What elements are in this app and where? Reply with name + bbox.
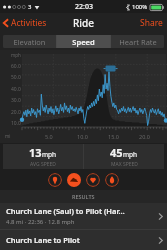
- button[interactable]: Calories: [105, 173, 119, 187]
- button[interactable]: Speed: [67, 173, 81, 187]
- staticText: 22:03: [75, 2, 93, 12]
- staticText: Elevation: [13, 37, 46, 47]
- staticText: 60.0: [11, 63, 21, 70]
- staticText: 10.0: [77, 133, 88, 140]
- staticText: Church Lane (Saul) to Pilot (Har…: [6, 206, 125, 216]
- staticText: 45: [110, 145, 123, 160]
- button[interactable]: Elevation: [3, 35, 56, 48]
- button[interactable]: Church Lane to Pilot: [0, 230, 167, 250]
- staticText: MAX SPEED: [111, 161, 138, 168]
- button[interactable]: 45: [84, 144, 164, 169]
- staticText: mph: [11, 52, 21, 58]
- staticText: 10.0: [11, 120, 21, 127]
- staticText: mph: [42, 150, 57, 159]
- button[interactable]: 13: [3, 144, 83, 169]
- button[interactable]: Activities: [0, 14, 51, 32]
- button[interactable]: Share: [136, 14, 167, 32]
- staticText: 4.8 mi · 22:36 · 12.8 mph: [6, 218, 75, 226]
- staticText: Speed: [72, 37, 95, 47]
- staticText: 50.0: [11, 74, 21, 81]
- staticText: 3: [28, 3, 32, 11]
- staticText: mph: [123, 150, 138, 159]
- staticText: 30.0: [11, 97, 21, 104]
- staticText: mi: [5, 133, 11, 139]
- staticText: RESULTS: [72, 193, 95, 200]
- staticText: Ride: [73, 16, 94, 30]
- staticText: AVG SPEED: [30, 161, 56, 168]
- staticText: 100%: [132, 3, 148, 11]
- button[interactable]: Church Lane (Saul) to Pilot (Har…: [0, 203, 167, 229]
- staticText: 15.0: [108, 133, 119, 140]
- staticText: Church Lane to Pilot: [6, 235, 80, 245]
- staticText: Activities: [11, 17, 47, 29]
- button[interactable]: Heart rate: [86, 173, 100, 187]
- button[interactable]: Segments: [48, 173, 62, 187]
- staticText: Heart Rate: [119, 37, 157, 47]
- staticText: 13: [29, 145, 42, 160]
- button[interactable]: Speed: [57, 35, 110, 48]
- staticText: 20.0: [139, 133, 150, 140]
- staticText: 5.0: [45, 133, 53, 140]
- staticText: 20.0: [11, 109, 21, 116]
- button[interactable]: Heart Rate: [111, 35, 164, 48]
- staticText: 40.0: [11, 86, 21, 93]
